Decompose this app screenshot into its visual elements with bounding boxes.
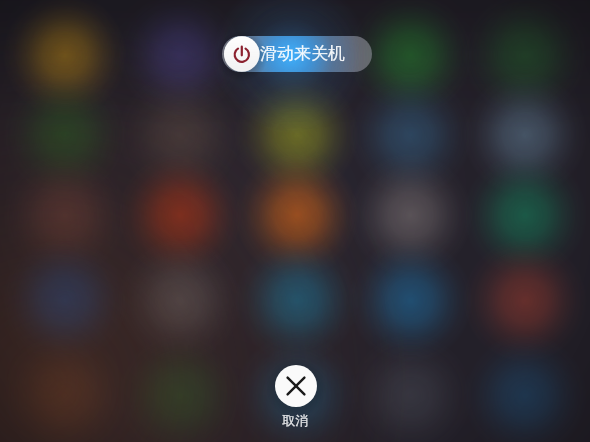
button[interactable]: 滑动来关机	[0, 0, 590, 442]
button[interactable]: 取消	[0, 0, 590, 442]
